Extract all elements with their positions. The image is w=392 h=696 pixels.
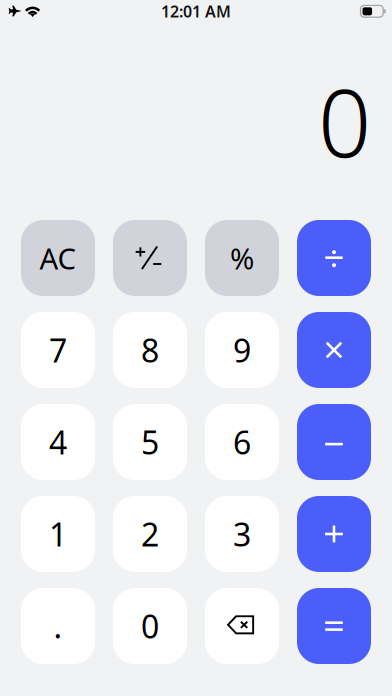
button[interactable]: Add — [297, 496, 371, 572]
staticText: 1 — [49, 513, 67, 555]
button[interactable]: Divide — [297, 220, 371, 296]
button[interactable]: AC — [21, 220, 95, 296]
staticText: 6 — [233, 421, 251, 463]
staticText: 12:01 AM — [161, 1, 231, 22]
button[interactable]: % — [205, 220, 279, 296]
button[interactable]: 5 — [113, 404, 187, 480]
button[interactable]: 1 — [21, 496, 95, 572]
button[interactable]: Multiply — [297, 312, 371, 388]
staticText: 5 — [141, 421, 159, 463]
button[interactable]: Equals — [297, 588, 371, 664]
staticText: 9 — [233, 329, 251, 371]
staticText: 0 — [318, 59, 371, 183]
button[interactable]: 3 — [205, 496, 279, 572]
staticText: % — [230, 238, 254, 277]
button[interactable]: 4 — [21, 404, 95, 480]
staticText: 4 — [49, 421, 67, 463]
button[interactable]: 7 — [21, 312, 95, 388]
staticText: 2 — [141, 513, 159, 555]
button[interactable]: 2 — [113, 496, 187, 572]
staticText: 0 — [141, 605, 159, 647]
staticText: AC — [39, 238, 76, 277]
button[interactable]: 6 — [205, 404, 279, 480]
button[interactable]: 8 — [113, 312, 187, 388]
staticText: 8 — [141, 329, 159, 371]
staticText: . — [53, 605, 62, 647]
button[interactable]: 0 — [113, 588, 187, 664]
staticText: 3 — [233, 513, 251, 555]
button[interactable]: Toggle sign — [113, 220, 187, 296]
button[interactable]: Delete — [205, 588, 279, 664]
staticText: 7 — [49, 329, 67, 371]
button[interactable]: Subtract — [297, 404, 371, 480]
button[interactable]: 9 — [205, 312, 279, 388]
button[interactable]: . — [21, 588, 95, 664]
